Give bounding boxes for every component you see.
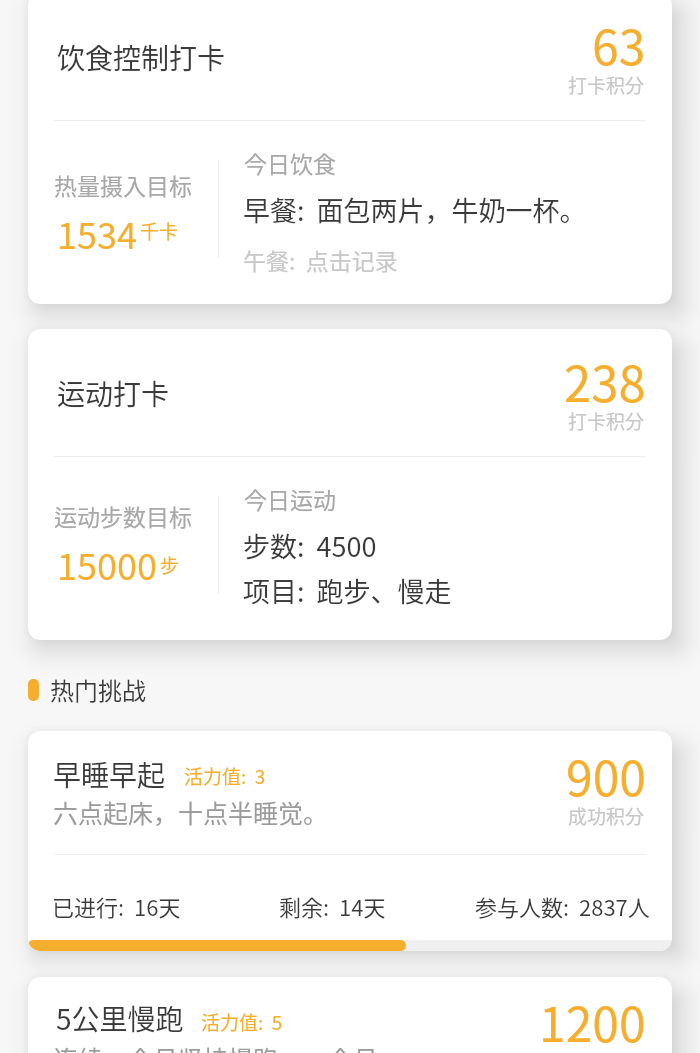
staticText: 早餐: 面包两片，牛奶一杯。 xyxy=(243,190,587,229)
staticText: 午餐: 点击记录 xyxy=(243,243,398,276)
staticText: 步数: 4500 xyxy=(243,526,377,565)
staticText: 900 xyxy=(566,740,646,810)
staticText: 运动步数目标 xyxy=(54,499,192,532)
staticText: 热门挑战 xyxy=(50,672,146,707)
staticText: 早睡早起 xyxy=(53,754,166,795)
staticText: 热量摄入目标 xyxy=(54,168,192,201)
staticText: 连续一个月坚持慢跑，一个月… xyxy=(53,1040,404,1053)
staticText: 成功积分 xyxy=(568,802,645,830)
staticText: 63 xyxy=(592,9,646,79)
staticText: 剩余: 14天 xyxy=(279,890,386,922)
staticText: 238 xyxy=(564,345,646,416)
staticText: 项目: 跑步、慢走 xyxy=(243,571,452,610)
button[interactable]: 饮食控制打卡 xyxy=(28,0,672,304)
staticText: 参与人数: 2837人 xyxy=(475,890,650,922)
staticText: 今日运动 xyxy=(244,482,336,515)
staticText: 5公里慢跑 xyxy=(56,998,184,1039)
staticText: 步 xyxy=(160,551,180,579)
staticText: 已进行: 16天 xyxy=(52,890,181,922)
button[interactable]: 运动打卡 xyxy=(28,329,672,640)
button[interactable]: 早睡早起 xyxy=(28,731,672,951)
staticText: 活力值: 3 xyxy=(184,762,266,790)
button[interactable]: 热门挑战 xyxy=(28,679,135,714)
staticText: 1200 xyxy=(539,986,646,1053)
staticText: 活力值: 5 xyxy=(201,1008,283,1036)
button[interactable]: 5公里慢跑 xyxy=(28,977,672,1053)
staticText: 今日饮食 xyxy=(244,146,336,179)
staticText: 六点起床，十点半睡觉。 xyxy=(53,794,329,830)
staticText: 1534 xyxy=(57,207,137,259)
staticText: 千卡 xyxy=(140,217,179,245)
staticText: 饮食控制打卡 xyxy=(57,37,226,78)
staticText: 打卡积分 xyxy=(568,407,645,435)
staticText: 打卡积分 xyxy=(568,71,645,99)
staticText: 15000 xyxy=(57,538,157,590)
staticText: 运动打卡 xyxy=(57,373,170,414)
